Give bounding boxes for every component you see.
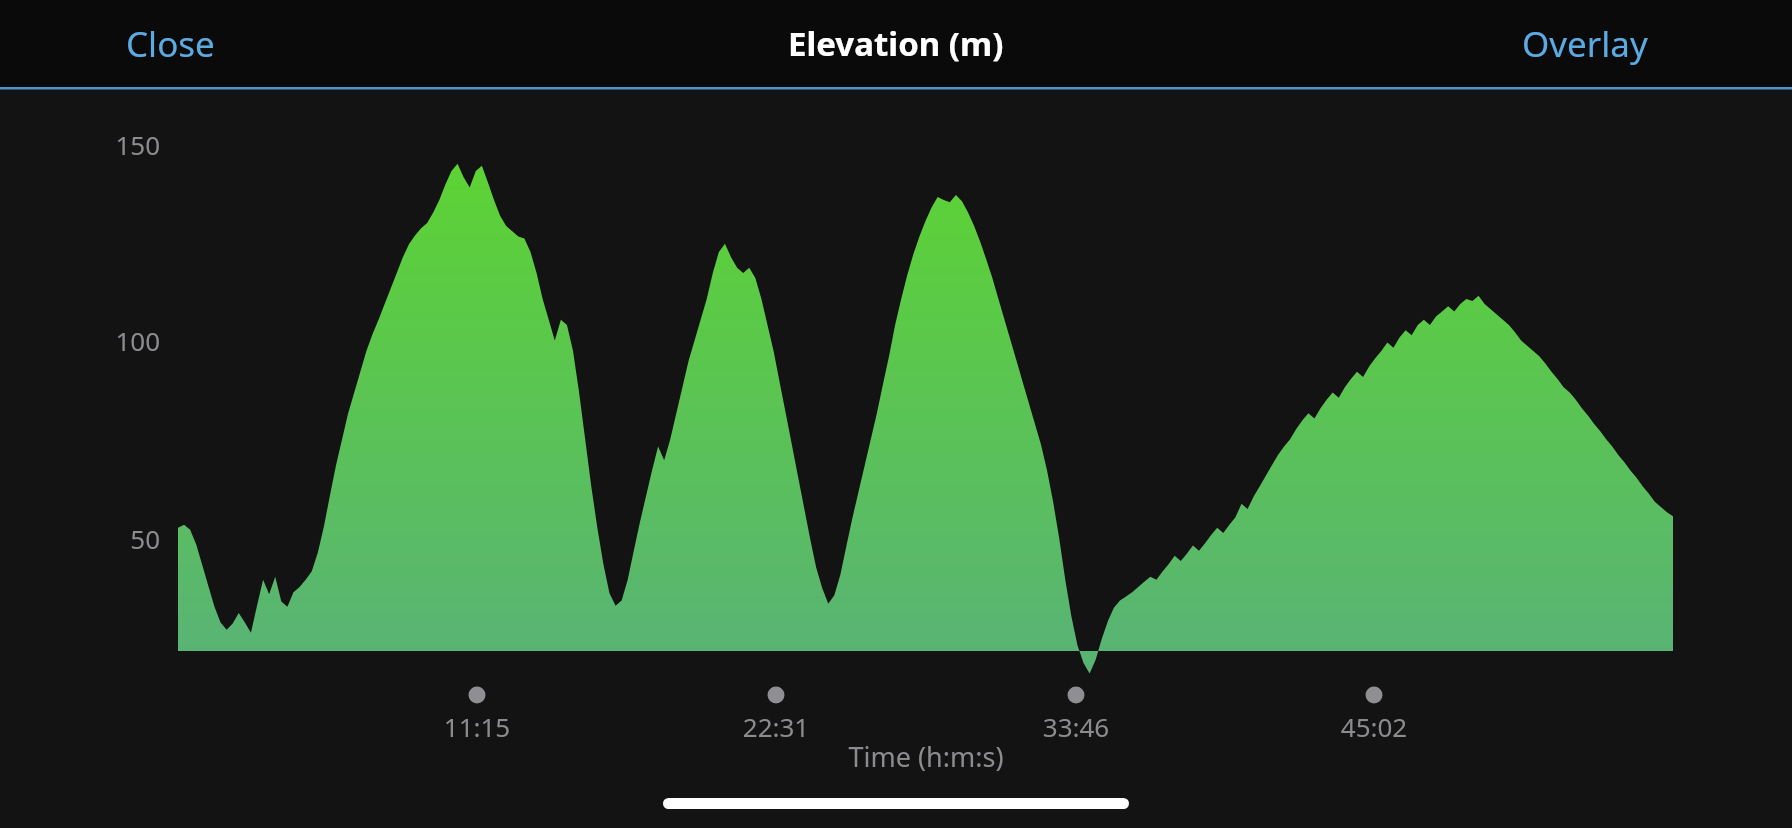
staticText: Close [126, 20, 215, 68]
staticText: 11:15 [407, 709, 547, 744]
staticText: 45:02 [1304, 709, 1444, 744]
staticText: 50 [96, 521, 160, 556]
staticText: Time (h:m:s) [786, 738, 1066, 775]
button[interactable]: Overlay [1508, 8, 1662, 80]
staticText: 100 [96, 323, 160, 358]
staticText: 33:46 [1006, 709, 1146, 744]
staticText: Elevation (m) [788, 21, 1004, 66]
staticText: 150 [96, 127, 160, 162]
other: Home indicator [663, 798, 1129, 809]
staticText: 22:31 [706, 709, 846, 744]
staticText: Overlay [1522, 20, 1648, 68]
button[interactable]: Close [112, 8, 229, 80]
